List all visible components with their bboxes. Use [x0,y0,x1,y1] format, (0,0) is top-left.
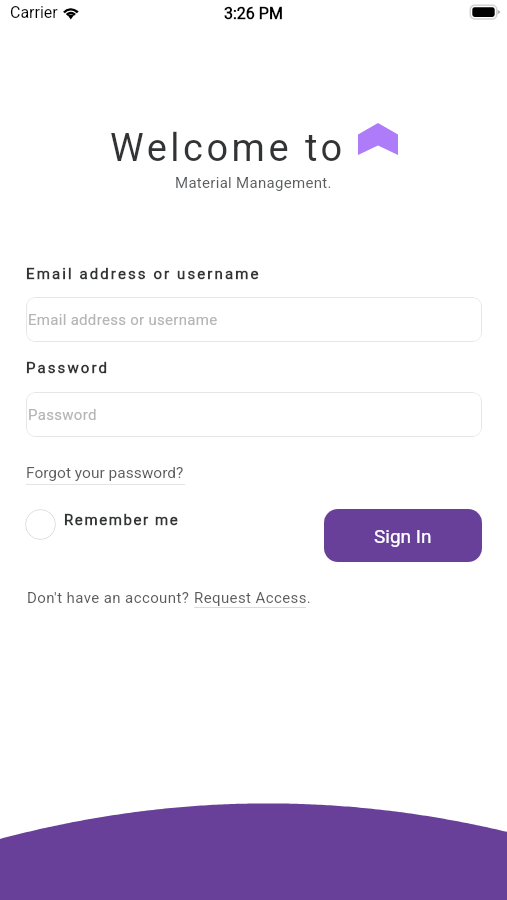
button[interactable]: Forgot your password? [26,464,185,482]
staticText: Request Access. [194,589,312,607]
staticText: Password [26,359,110,377]
other: Battery [468,3,501,21]
button[interactable]: Remember me [25,509,180,540]
staticText: 3:26 PM [224,4,283,23]
button[interactable]: Password [26,392,482,437]
button[interactable]: Email address or username [26,297,482,342]
staticText: Don't have an account? [27,589,194,607]
staticText: Sign In [374,525,432,547]
staticText: Welcome to [110,126,346,171]
staticText: Password [28,406,97,424]
staticText: Material Management. [175,174,332,192]
other: Wi-Fi [58,4,84,22]
staticText: Carrier [10,3,58,22]
staticText: Remember me [64,511,180,529]
staticText: Email address or username [26,265,261,283]
staticText: Email address or username [28,311,218,329]
button[interactable]: Request Access. [194,589,312,607]
staticText: Forgot your password? [26,464,184,482]
button[interactable]: Sign In [324,509,482,562]
